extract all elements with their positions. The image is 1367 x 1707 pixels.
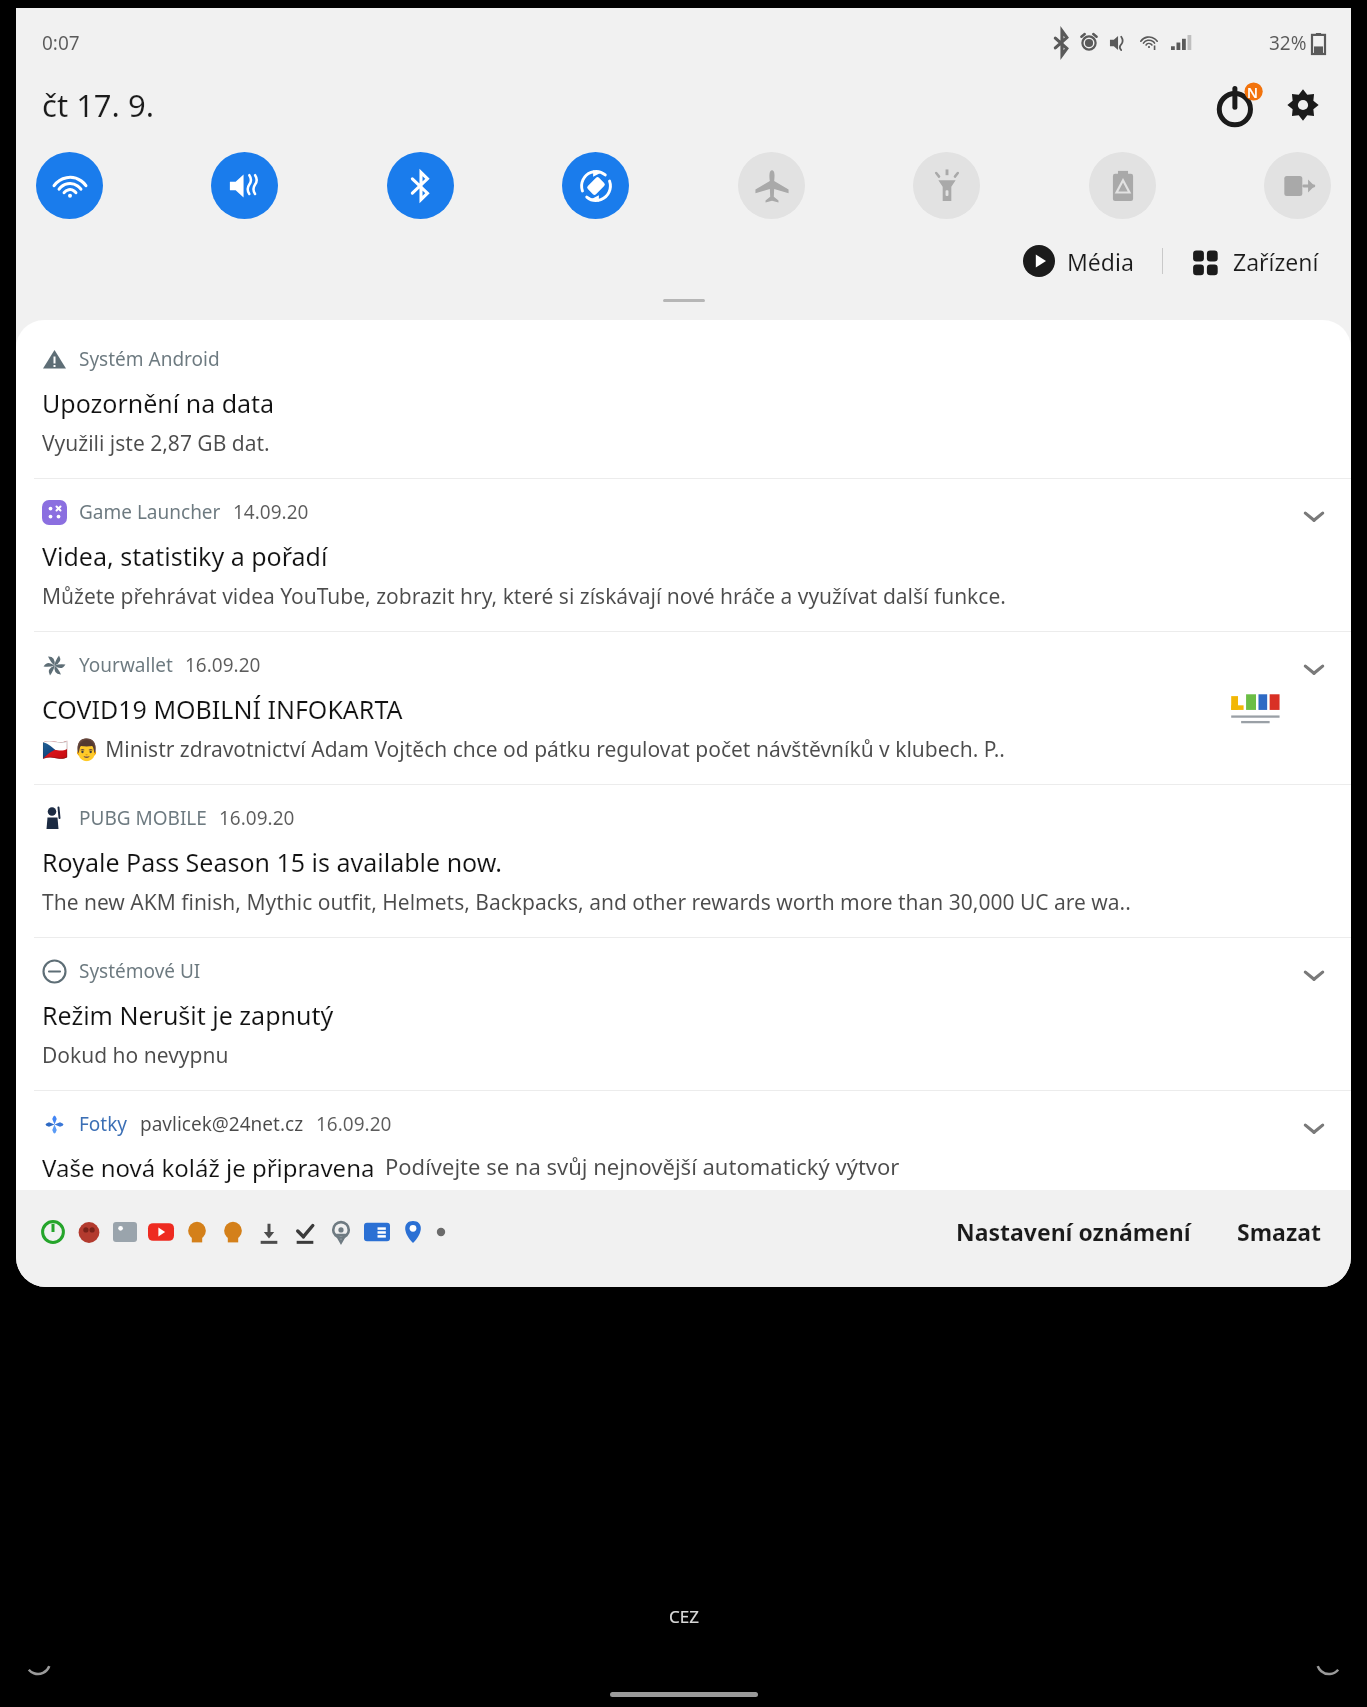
button[interactable]: Flashlight: [913, 152, 980, 219]
button[interactable]: Airplane mode: [738, 152, 805, 219]
staticText: 16.09.20: [316, 1111, 392, 1137]
staticText: Zařízení: [1233, 246, 1319, 277]
button[interactable]: Expand: [1297, 958, 1331, 992]
staticText: 16.09.20: [219, 805, 295, 831]
button[interactable]: Mobile hotspot: [1264, 152, 1331, 219]
staticText: Dokud ho nevypnu: [42, 1041, 229, 1070]
button[interactable]: Auto rotate: [562, 152, 629, 219]
staticText: Royale Pass Season 15 is available now.: [42, 845, 503, 879]
button[interactable]: Fotky: [16, 1091, 1351, 1190]
staticText: Videa, statistiky a pořadí: [42, 539, 328, 573]
button[interactable]: Expand: [1297, 652, 1331, 686]
button[interactable]: Systémové UI: [16, 938, 1351, 1090]
staticText: Režim Nerušit je zapnutý: [42, 998, 334, 1032]
staticText: Smazat: [1237, 1216, 1321, 1247]
staticText: Podívejte se na svůj nejnovější automati…: [385, 1151, 900, 1181]
staticText: CEZ: [669, 1605, 699, 1628]
staticText: 0:07: [42, 30, 80, 56]
staticText: Nastavení oznámení: [956, 1216, 1191, 1247]
staticText: Upozornění na data: [42, 386, 275, 420]
button[interactable]: Sound mode: [211, 152, 278, 219]
staticText: Systém Android: [79, 346, 220, 372]
staticText: Využili jste 2,87 GB dat.: [42, 429, 270, 458]
button[interactable]: Expand: [1297, 499, 1331, 533]
staticText: Můžete přehrávat videa YouTube, zobrazit…: [42, 582, 1006, 611]
button[interactable]: Expand: [1297, 1111, 1331, 1145]
staticText: The new AKM finish, Mythic outfit, Helme…: [42, 888, 1131, 917]
staticText: PUBG MOBILE: [79, 805, 207, 831]
staticText: Média: [1067, 246, 1134, 277]
button[interactable]: PUBG MOBILE: [16, 785, 1351, 937]
button[interactable]: Zařízení: [1185, 242, 1325, 281]
button[interactable]: Smazat: [1231, 1212, 1327, 1251]
staticText: COVID19 MOBILNÍ INFOKARTA: [42, 692, 403, 726]
staticText: 🇨🇿 👨 Ministr zdravotnictví Adam Vojtěch …: [42, 735, 1005, 764]
staticText: 16.09.20: [185, 652, 261, 678]
button[interactable]: Game Launcher: [16, 479, 1351, 631]
staticText: 14.09.20: [233, 499, 309, 525]
staticText: pavlicek@24net.cz: [140, 1111, 304, 1137]
other: Camera: [1317, 1650, 1341, 1674]
button[interactable]: Systém Android: [16, 320, 1351, 478]
staticText: Yourwallet: [79, 652, 173, 678]
staticText: Game Launcher: [79, 499, 221, 525]
button[interactable]: Power off: [1211, 78, 1265, 132]
staticText: Systémové UI: [79, 958, 201, 984]
button[interactable]: Wi-Fi: [36, 152, 103, 219]
button[interactable]: Média: [1017, 241, 1140, 281]
staticText: 32%: [1269, 30, 1307, 56]
staticText: N: [1247, 83, 1258, 102]
button[interactable]: Bluetooth: [387, 152, 454, 219]
button[interactable]: Nastavení oznámení: [950, 1212, 1197, 1251]
button[interactable]: Power saving: [1089, 152, 1156, 219]
staticText: Fotky: [79, 1111, 128, 1137]
button[interactable]: Yourwallet: [16, 632, 1351, 784]
other: Phone: [26, 1650, 50, 1674]
staticText: Vaše nová koláž je připravena: [42, 1151, 375, 1184]
button[interactable]: Settings: [1281, 83, 1325, 127]
staticText: čt 17. 9.: [42, 84, 155, 126]
